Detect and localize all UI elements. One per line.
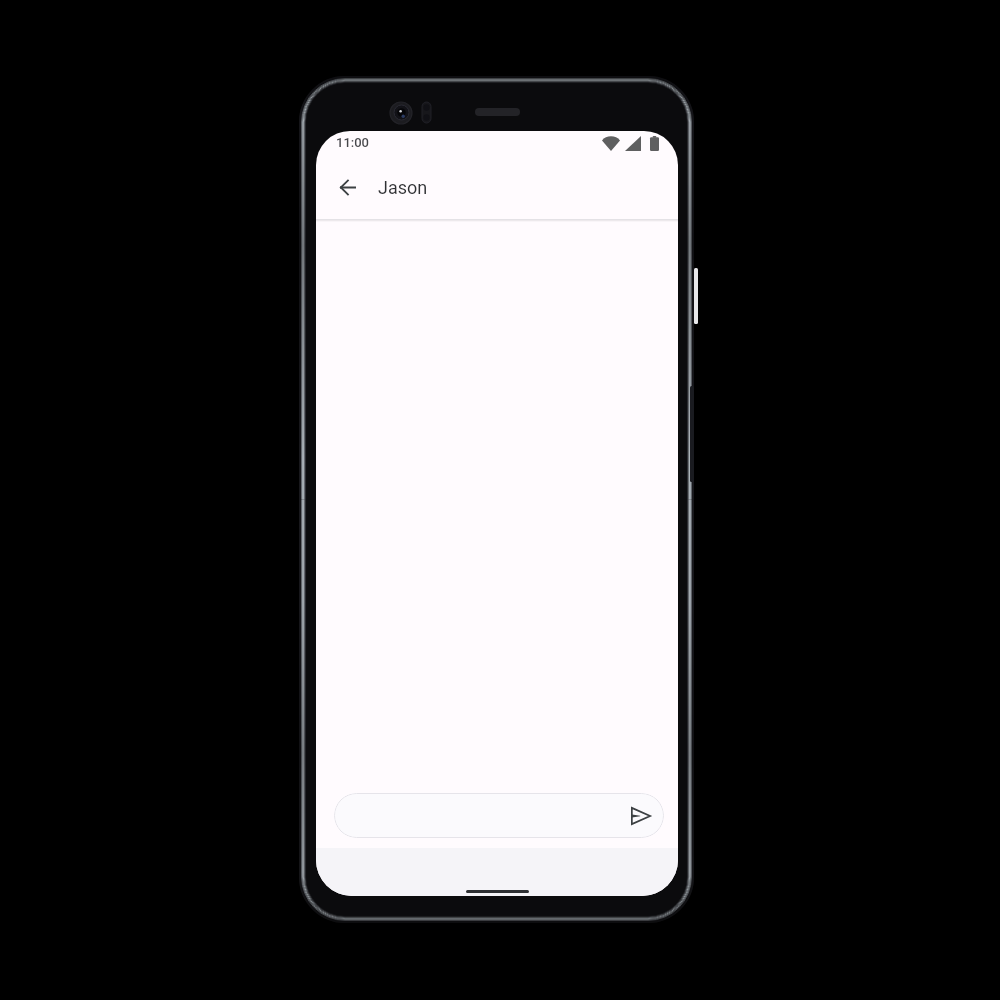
button[interactable]: Send xyxy=(334,793,664,838)
staticText: Jason xyxy=(378,177,428,198)
button[interactable]: Back xyxy=(328,167,368,207)
staticText: 11:00 xyxy=(336,135,370,150)
button[interactable]: Send xyxy=(625,800,657,832)
